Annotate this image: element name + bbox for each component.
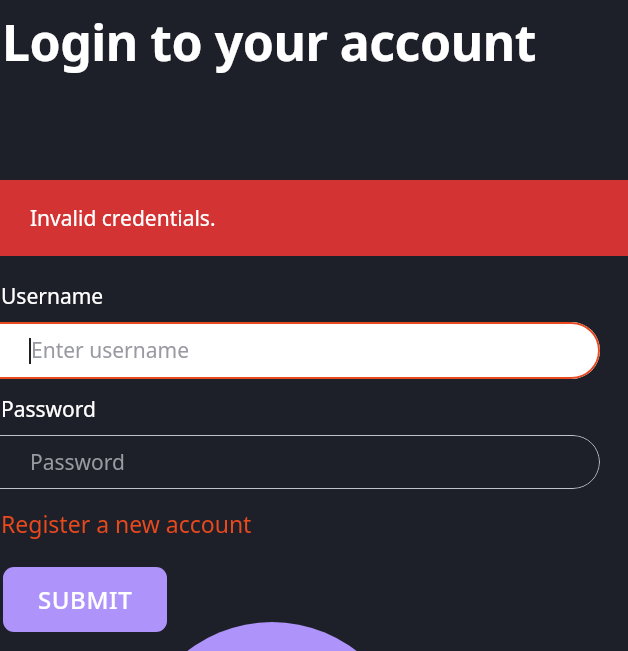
- staticText: Password: [1, 395, 96, 424]
- button[interactable]: Password: [0, 435, 600, 489]
- staticText: Invalid credentials.: [30, 204, 216, 233]
- button[interactable]: SUBMIT: [3, 567, 167, 632]
- staticText: Enter username: [31, 336, 190, 365]
- staticText: Login to your account: [2, 8, 536, 76]
- button[interactable]: Register a new account: [0, 506, 253, 541]
- staticText: Register a new account: [1, 508, 252, 539]
- staticText: Username: [1, 282, 104, 311]
- staticText: SUBMIT: [38, 583, 133, 616]
- button[interactable]: Enter username: [0, 322, 600, 379]
- button[interactable]: Invalid credentials.: [0, 180, 628, 256]
- staticText: Password: [30, 448, 125, 477]
